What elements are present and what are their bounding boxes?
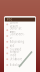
staticText: Consectetur	[9, 32, 24, 40]
button[interactable]: Consectetur	[4, 33, 36, 39]
staticText: Tempor incid	[9, 50, 19, 57]
staticText: Dolor sit amet	[9, 27, 21, 34]
button[interactable]: Adipiscing	[4, 39, 36, 45]
button[interactable]: Dolor sit amet	[4, 27, 36, 33]
button[interactable]: Ut labore	[4, 56, 36, 62]
staticText: Sed eiusmod	[9, 44, 21, 51]
staticText: Adipiscing	[9, 40, 24, 43]
button[interactable]: Et dolore	[4, 62, 36, 68]
button[interactable]: Lorem ipsum	[4, 21, 36, 27]
staticText: Et dolore	[9, 63, 22, 67]
button[interactable]: Sed eiusmod	[4, 45, 36, 50]
staticText: Lorem ipsum	[9, 21, 17, 28]
staticText: Title	[6, 18, 12, 21]
staticText: Ut labore	[9, 57, 22, 61]
button[interactable]: Tempor incid	[4, 50, 36, 56]
